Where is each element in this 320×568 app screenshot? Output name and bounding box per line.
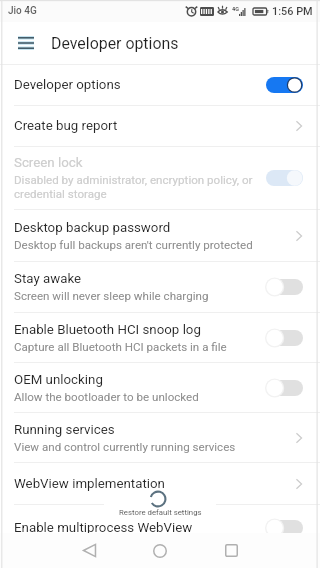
staticText: Desktop full backups aren't currently pr… (14, 238, 253, 252)
button[interactable]: WebView implementation (0, 463, 320, 504)
staticText: Running services (14, 422, 115, 438)
button[interactable] (266, 279, 303, 295)
button[interactable]: Screen lock (0, 147, 320, 209)
staticText: Capture all Bluetooth HCI packets in a f… (14, 340, 227, 354)
staticText: Stay awake (14, 271, 82, 287)
staticText: Enable multiprocess WebView (14, 520, 193, 536)
button[interactable]: Running services (0, 413, 320, 462)
button[interactable]: Developer options (0, 65, 320, 105)
staticText: Developer options (51, 34, 179, 53)
button[interactable]: Home (139, 533, 181, 568)
staticText: 4G (232, 6, 239, 12)
button[interactable] (266, 170, 303, 186)
staticText: View and control currently running servi… (14, 440, 236, 454)
button[interactable]: Back (68, 533, 110, 568)
button[interactable]: Enable Bluetooth HCI snoop log (0, 313, 320, 362)
staticText: Jio 4G (8, 5, 37, 17)
button[interactable]: Restore default settings (104, 490, 216, 519)
button[interactable]: OEM unlocking (0, 363, 320, 412)
button[interactable] (266, 330, 303, 346)
staticText: OEM unlocking (14, 372, 103, 388)
button[interactable] (266, 380, 303, 396)
button[interactable]: Enable multiprocess WebView (0, 505, 320, 551)
button[interactable]: Desktop backup password (0, 210, 320, 261)
staticText: 1:56 PM (272, 5, 313, 18)
button[interactable]: Open navigation menu (17, 22, 34, 64)
button[interactable] (266, 520, 303, 536)
staticText: Developer options (14, 77, 121, 93)
staticText: Allow the bootloader to be unlocked (14, 390, 199, 404)
button[interactable]: Recent apps (210, 533, 252, 568)
staticText: Screen will never sleep while charging (14, 289, 209, 303)
button[interactable]: Stay awake (0, 262, 320, 312)
staticText: Enable Bluetooth HCI snoop log (14, 322, 201, 338)
button[interactable] (266, 77, 303, 93)
staticText: Disabled by administrator, encryption po… (14, 173, 260, 201)
staticText: Create bug report (14, 118, 118, 134)
button[interactable]: Create bug report (0, 106, 320, 146)
staticText: WebView implementation (14, 476, 165, 492)
staticText: Screen lock (14, 155, 83, 171)
staticText: Desktop backup password (14, 220, 171, 236)
staticText: Restore default settings (119, 508, 202, 517)
